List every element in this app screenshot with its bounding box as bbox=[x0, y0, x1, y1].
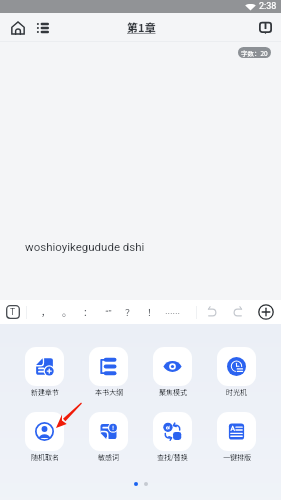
staticText: …… bbox=[165, 307, 180, 318]
button[interactable]: Reading mode bbox=[256, 18, 275, 37]
staticText: 聚焦模式 bbox=[159, 387, 187, 397]
button[interactable]: Chapter list bbox=[33, 18, 52, 37]
staticText: T bbox=[10, 307, 16, 317]
button[interactable]: 聚焦模式 bbox=[153, 347, 192, 397]
button[interactable]: 随机取名 bbox=[25, 412, 64, 462]
button[interactable]: 查找/替换 bbox=[153, 412, 192, 462]
staticText: “” bbox=[101, 307, 116, 318]
button[interactable]: 新建章节 bbox=[25, 347, 64, 397]
staticText: ， bbox=[41, 305, 51, 319]
staticText: 新建章节 bbox=[31, 387, 59, 397]
button[interactable]: 本书大纲 bbox=[89, 347, 128, 397]
button[interactable]: 。 bbox=[56, 301, 77, 323]
button[interactable]: 一键排版 bbox=[217, 412, 256, 462]
staticText: 查找/替换 bbox=[157, 452, 188, 462]
button[interactable]: Add bbox=[257, 303, 275, 321]
staticText: woshioyikegudude dshi bbox=[25, 240, 145, 253]
staticText: ： bbox=[83, 305, 93, 319]
button[interactable]: Undo bbox=[203, 303, 221, 321]
button[interactable]: Text style bbox=[6, 305, 20, 319]
staticText: 。 bbox=[62, 305, 72, 319]
staticText: 随机取名 bbox=[31, 452, 59, 462]
staticText: 本书大纲 bbox=[95, 387, 123, 397]
button[interactable]: ： bbox=[77, 301, 98, 323]
staticText: ！ bbox=[147, 305, 157, 319]
staticText: 2:38 bbox=[259, 1, 277, 12]
button[interactable]: 敏感词 bbox=[89, 412, 128, 462]
staticText: ？ bbox=[125, 305, 135, 319]
button[interactable]: ！ bbox=[141, 301, 162, 323]
button[interactable]: Home bbox=[8, 18, 27, 37]
button[interactable]: 字数：20 bbox=[238, 47, 271, 58]
button[interactable]: 第1章 bbox=[127, 19, 156, 35]
button[interactable]: ， bbox=[35, 301, 56, 323]
staticText: 时光机 bbox=[226, 387, 247, 397]
button[interactable]: ？ bbox=[119, 301, 140, 323]
button[interactable]: Redo bbox=[229, 303, 247, 321]
staticText: 第1章 bbox=[127, 19, 156, 35]
button[interactable]: 时光机 bbox=[217, 347, 256, 397]
button[interactable]: …… bbox=[162, 301, 183, 323]
button[interactable]: “” bbox=[98, 301, 119, 323]
staticText: 敏感词 bbox=[98, 452, 119, 462]
staticText: 字数：20 bbox=[241, 48, 268, 57]
staticText: 一键排版 bbox=[223, 452, 251, 462]
